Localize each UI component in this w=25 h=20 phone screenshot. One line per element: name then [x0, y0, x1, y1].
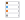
- button[interactable]: [5, 5, 20, 9]
- button[interactable]: [5, 1, 20, 5]
- button[interactable]: [5, 13, 20, 17]
- button[interactable]: [5, 9, 20, 13]
